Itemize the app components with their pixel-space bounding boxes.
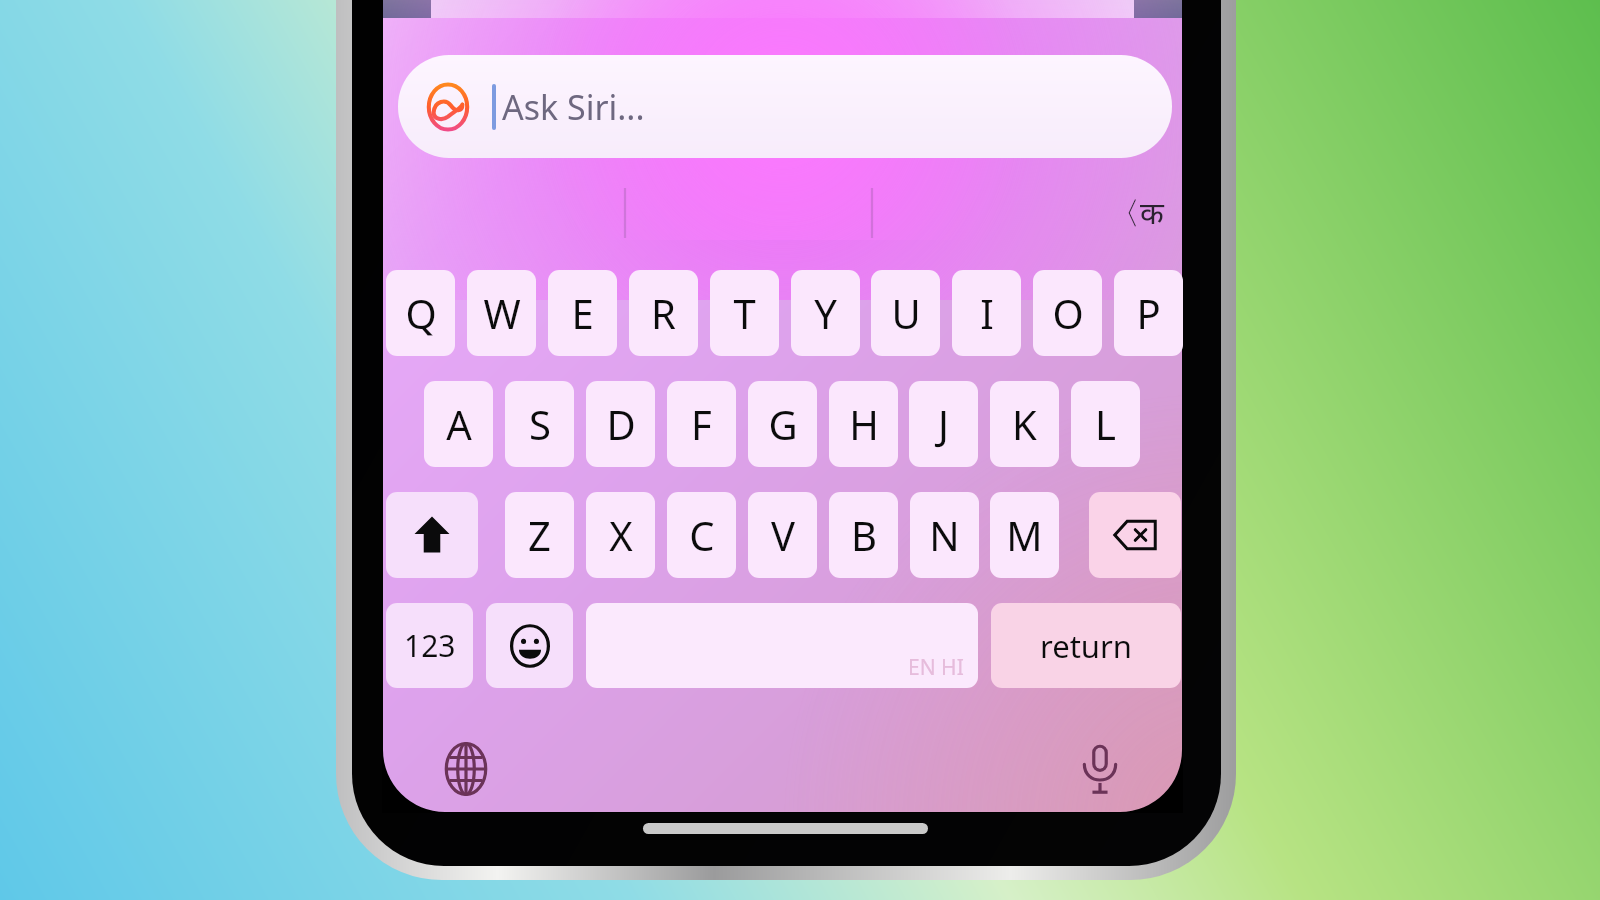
button[interactable]: Y	[791, 270, 860, 356]
button[interactable]: Ask Siri text field	[398, 55, 1172, 158]
staticText: E	[571, 286, 594, 340]
button[interactable]: Space	[586, 603, 978, 688]
button[interactable]: B	[829, 492, 898, 578]
button[interactable]: E	[548, 270, 617, 356]
staticText: Y	[814, 286, 837, 340]
button[interactable]: L	[1071, 381, 1140, 467]
button[interactable]: A	[424, 381, 493, 467]
staticText: F	[691, 397, 712, 451]
staticText: return	[1040, 625, 1132, 667]
button[interactable]: N	[910, 492, 979, 578]
button[interactable]: Change keyboard	[432, 735, 500, 803]
button[interactable]: P	[1114, 270, 1183, 356]
staticText: G	[768, 397, 798, 451]
button[interactable]: K	[990, 381, 1059, 467]
button[interactable]: S	[505, 381, 574, 467]
button[interactable]: F	[667, 381, 736, 467]
button[interactable]: Backspace	[1089, 492, 1181, 578]
button[interactable]	[386, 603, 473, 688]
staticText: W	[483, 286, 521, 340]
staticText: L	[1095, 397, 1116, 451]
staticText: 123	[404, 625, 456, 666]
button[interactable]: return	[991, 603, 1181, 688]
staticText: S	[529, 397, 551, 451]
staticText: I	[980, 286, 994, 340]
button[interactable]: Switch to Hindi	[1100, 186, 1172, 238]
button[interactable]: I	[952, 270, 1021, 356]
staticText: Ask Siri...	[502, 84, 645, 130]
staticText: P	[1136, 286, 1161, 340]
button[interactable]: O	[1033, 270, 1102, 356]
staticText: D	[606, 397, 636, 451]
button[interactable]: Z	[505, 492, 574, 578]
button[interactable]: Emoji	[486, 603, 573, 688]
button[interactable]: X	[586, 492, 655, 578]
staticText: EN HI	[908, 653, 964, 682]
staticText: M	[1006, 508, 1043, 562]
button[interactable]: 123	[386, 603, 473, 688]
button[interactable]: U	[871, 270, 940, 356]
staticText: Q	[405, 286, 437, 340]
staticText: K	[1012, 397, 1037, 451]
button[interactable]: Dictate	[1066, 735, 1134, 803]
button[interactable]: Shift	[386, 492, 478, 578]
staticText: V	[771, 508, 795, 562]
staticText: J	[938, 397, 949, 451]
button[interactable]: J	[909, 381, 978, 467]
button[interactable]: H	[829, 381, 898, 467]
staticText: X	[609, 508, 633, 562]
button[interactable]: R	[629, 270, 698, 356]
staticText: T	[733, 286, 756, 340]
button[interactable]: M	[990, 492, 1059, 578]
staticText: A	[446, 397, 472, 451]
staticText: R	[651, 286, 676, 340]
staticText: Z	[528, 508, 551, 562]
button[interactable]: T	[710, 270, 779, 356]
button[interactable]: D	[586, 381, 655, 467]
button[interactable]: C	[667, 492, 736, 578]
staticText: H	[849, 397, 879, 451]
staticText: 〈क	[1109, 191, 1164, 233]
button[interactable]: Q	[386, 270, 455, 356]
staticText: U	[891, 286, 921, 340]
staticText: C	[689, 508, 715, 562]
staticText: N	[929, 508, 960, 562]
staticText: B	[851, 508, 877, 562]
button[interactable]: G	[748, 381, 817, 467]
button[interactable]: W	[467, 270, 536, 356]
staticText: O	[1052, 286, 1084, 340]
button[interactable]: V	[748, 492, 817, 578]
